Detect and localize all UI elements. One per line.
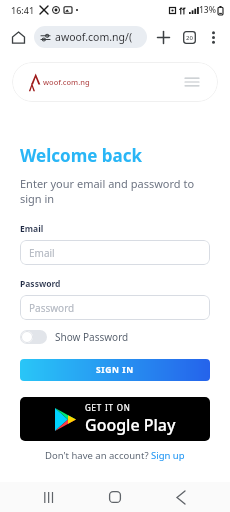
staticText: woof.com.ng bbox=[43, 77, 90, 87]
staticText: 13% bbox=[199, 4, 216, 16]
staticText: Email bbox=[20, 223, 44, 235]
button[interactable]: Menu bbox=[182, 72, 202, 92]
button[interactable]: Home bbox=[8, 27, 28, 47]
button[interactable]: Show Password bbox=[20, 330, 129, 344]
button[interactable]: More options bbox=[204, 28, 222, 46]
staticText: Password bbox=[20, 278, 61, 290]
staticText: Don't have an account? bbox=[45, 449, 151, 462]
staticText: 20 bbox=[186, 34, 193, 42]
button[interactable]: SIGN IN bbox=[20, 359, 210, 381]
button[interactable]: Recent apps bbox=[32, 482, 66, 512]
staticText: Welcome back bbox=[20, 144, 143, 167]
button[interactable]: Tabs bbox=[179, 27, 199, 47]
button[interactable]: Password bbox=[20, 295, 210, 320]
staticText: 16:41 bbox=[11, 4, 35, 16]
staticText: GET IT ON bbox=[85, 402, 131, 413]
staticText: Enter your email and password to sign in bbox=[20, 176, 195, 206]
staticText: Show Password bbox=[55, 330, 129, 344]
button[interactable]: awoof.com.ng/( bbox=[34, 26, 147, 48]
button[interactable]: Get it on Google Play bbox=[20, 397, 210, 441]
button[interactable]: woof.com.ng bbox=[28, 72, 90, 92]
button[interactable]: New tab bbox=[153, 27, 173, 47]
staticText: Google Play bbox=[85, 414, 176, 436]
button[interactable]: Home bbox=[98, 482, 132, 512]
staticText: Sign up bbox=[151, 449, 185, 462]
button[interactable]: Email bbox=[20, 240, 210, 265]
button[interactable]: Back bbox=[164, 482, 198, 512]
button[interactable]: Sign up bbox=[151, 449, 185, 462]
staticText: SIGN IN bbox=[96, 364, 134, 376]
staticText: Email bbox=[29, 246, 55, 260]
staticText: awoof.com.ng/( bbox=[55, 30, 133, 44]
staticText: Password bbox=[29, 301, 75, 315]
